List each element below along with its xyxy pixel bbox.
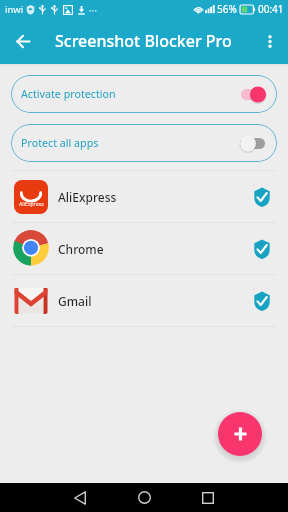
staticText: AliExpress bbox=[58, 189, 117, 205]
staticText: 56% bbox=[217, 2, 237, 16]
button[interactable]: Gmail bbox=[0, 275, 288, 326]
button[interactable]: Protect all apps bbox=[11, 124, 277, 162]
button[interactable]: Back bbox=[54, 483, 106, 512]
staticText: Protect all apps bbox=[21, 136, 99, 151]
staticText: Chrome bbox=[58, 241, 104, 257]
button[interactable]: Protected bbox=[254, 239, 270, 259]
staticText: Screenshot Blocker Pro bbox=[55, 30, 232, 52]
button[interactable]: Back bbox=[0, 18, 45, 64]
staticText: AliExpress bbox=[19, 200, 44, 207]
button[interactable]: Protected bbox=[254, 291, 270, 311]
button[interactable]: Chrome bbox=[0, 223, 288, 274]
staticText: Activate protection bbox=[21, 87, 116, 102]
button[interactable]: Activate protection bbox=[11, 75, 277, 113]
button[interactable]: Protected bbox=[254, 187, 270, 207]
button[interactable]: More options bbox=[252, 18, 288, 64]
button[interactable]: Add app bbox=[218, 412, 262, 456]
staticText: Gmail bbox=[58, 293, 92, 309]
staticText: 00:41 bbox=[258, 2, 284, 16]
staticText: inwi bbox=[5, 3, 24, 16]
button[interactable]: Home bbox=[118, 483, 170, 512]
button[interactable]: Recents bbox=[182, 483, 234, 512]
button[interactable]: AliExpress bbox=[0, 171, 288, 222]
